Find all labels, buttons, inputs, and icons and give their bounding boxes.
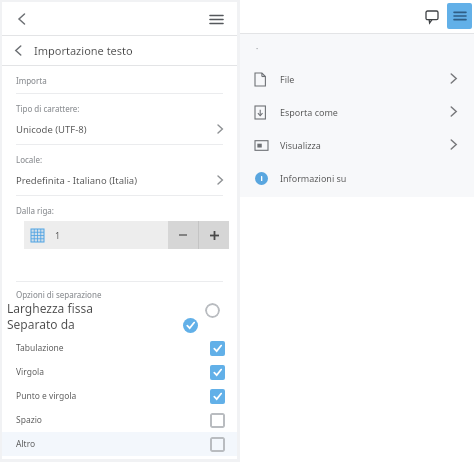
button[interactable]: Diminuisci — [168, 221, 198, 249]
staticText: Virgola — [16, 366, 210, 378]
button[interactable]: Importazione testo — [2, 36, 237, 65]
staticText: Dalla riga: — [16, 205, 54, 216]
staticText: Predefinita - Italiano (Italia) — [16, 174, 216, 187]
staticText: Tipo di carattere: — [16, 103, 80, 114]
button[interactable]: 1 — [24, 221, 168, 249]
button[interactable]: Menu — [203, 6, 229, 32]
staticText: Esporta come — [280, 106, 449, 118]
button[interactable]: i — [240, 161, 474, 194]
button[interactable]: Unicode (UTF-8) — [2, 114, 237, 144]
button[interactable]: Larghezza fissa — [204, 302, 221, 319]
staticText: Locale: — [16, 154, 43, 165]
button[interactable]: Altro — [2, 432, 237, 456]
button[interactable]: Spazio — [2, 408, 237, 432]
button[interactable]: Predefinita - Italiano (Italia) — [2, 165, 237, 195]
staticText: Visualizza — [280, 139, 449, 151]
button[interactable]: Commenti — [419, 4, 445, 30]
staticText: Separato da — [7, 316, 75, 332]
button[interactable]: Separato da — [182, 317, 199, 334]
staticText: Informazioni su — [280, 172, 449, 184]
staticText: Larghezza fissa — [7, 300, 93, 316]
staticText: Unicode (UTF-8) — [16, 123, 216, 136]
staticText: File — [280, 73, 449, 85]
button[interactable]: Esporta come — [240, 95, 474, 128]
button[interactable]: Indietro — [8, 5, 36, 33]
staticText: Spazio — [16, 414, 210, 426]
button[interactable]: Aumenta — [199, 221, 229, 249]
button[interactable]: Virgola — [2, 360, 237, 384]
staticText: Punto e virgola — [16, 390, 210, 402]
staticText: 1 — [55, 229, 61, 241]
button[interactable]: File — [240, 62, 474, 95]
button[interactable]: Tabulazione — [2, 336, 237, 360]
staticText: Opzioni di separazione — [16, 289, 102, 300]
staticText: Importa — [16, 75, 47, 86]
staticText: Tabulazione — [16, 342, 210, 354]
button[interactable]: Visualizza — [240, 128, 474, 161]
staticText: · — [256, 43, 259, 54]
staticText: Altro — [16, 438, 210, 450]
staticText: Importazione testo — [34, 43, 133, 58]
button[interactable]: Menu — [447, 3, 472, 29]
button[interactable]: Punto e virgola — [2, 384, 237, 408]
staticText: i — [260, 174, 263, 184]
